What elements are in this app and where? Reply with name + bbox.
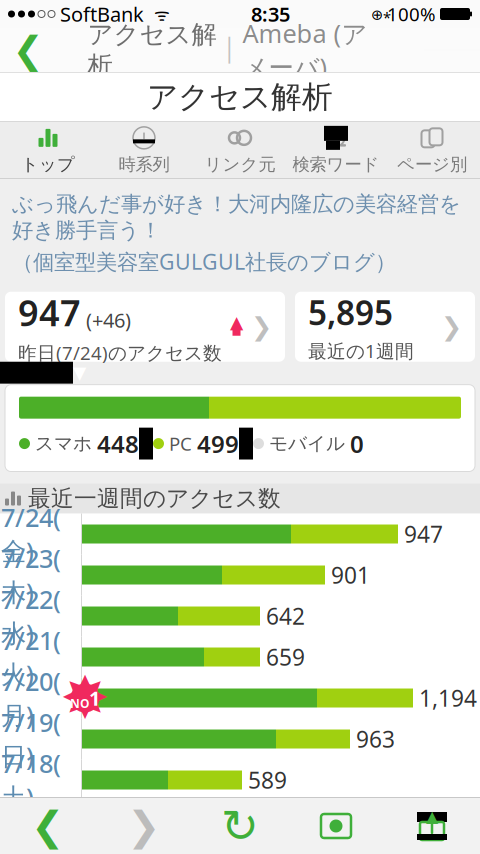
staticText: 0 xyxy=(350,428,364,459)
staticText: 1 xyxy=(89,685,100,711)
staticText: (+46) xyxy=(86,307,131,333)
staticText: （個室型美容室GULGUL社長のブログ） xyxy=(12,247,396,276)
button[interactable]: アクセス数をもっとみる xyxy=(0,801,480,843)
staticText: PC xyxy=(169,431,192,456)
staticText: 7/20(月) xyxy=(1,664,61,732)
button[interactable]: Reload xyxy=(192,798,288,854)
staticText: ❮ xyxy=(31,803,65,849)
staticText: SoftBank xyxy=(55,1,144,27)
staticText: 659 xyxy=(266,642,305,672)
staticText: スマホ xyxy=(35,432,92,455)
button[interactable]: Access analytics xyxy=(288,798,384,854)
button[interactable]: 時系列 xyxy=(96,122,192,178)
staticText: ページ別 xyxy=(397,154,467,175)
staticText: 947 xyxy=(404,519,443,549)
staticText: 963 xyxy=(356,724,395,754)
button[interactable]: 検索ワード xyxy=(288,122,384,178)
staticText: ✸ xyxy=(60,665,109,731)
staticText: ❯ xyxy=(441,312,462,341)
staticText: ❯ xyxy=(251,312,272,341)
staticText: ▲ xyxy=(426,807,438,826)
staticText: 8:35 xyxy=(251,1,290,27)
staticText: 7/24(金) xyxy=(1,500,61,568)
staticText: 5,895 xyxy=(308,290,393,334)
staticText: 7/19(日) xyxy=(1,705,61,773)
button[interactable]: リンク元 xyxy=(192,122,288,178)
staticText: 7/22(水) xyxy=(1,582,61,650)
staticText: ⊕ ⃰ xyxy=(371,4,387,24)
staticText: 589 xyxy=(248,765,287,795)
staticText: ❮ xyxy=(12,29,43,71)
staticText: ❯ xyxy=(127,803,161,849)
staticText: 642 xyxy=(266,601,305,631)
button[interactable]: 5,895 xyxy=(295,292,475,362)
staticText: Ameba (アメーバ) xyxy=(242,16,367,84)
button[interactable]: Back xyxy=(0,798,96,854)
staticText: 昨日(7/24)のアクセス数 xyxy=(18,340,222,365)
button[interactable]: トップ xyxy=(0,122,96,178)
staticText: 時系列 xyxy=(118,154,169,175)
staticText: │ xyxy=(222,37,236,63)
button[interactable]: ページ別 xyxy=(384,122,480,178)
staticText: 1,194 xyxy=(419,683,477,713)
staticText: ▲ xyxy=(230,312,243,332)
staticText: 499 xyxy=(197,428,239,459)
staticText: アクセス解析 xyxy=(87,19,216,81)
staticText: ぶっ飛んだ事が好き！大河内隆広の美容経営を好き勝手言う！ xyxy=(12,191,461,243)
staticText: アクセス解析 xyxy=(147,78,333,116)
button[interactable]: Back xyxy=(0,28,56,72)
staticText: トップ xyxy=(21,154,75,175)
staticText: モバイル xyxy=(269,432,345,455)
staticText: ↻ xyxy=(221,800,259,852)
staticText: 7/23(木) xyxy=(1,541,61,609)
staticText: リンク元 xyxy=(204,154,275,175)
button[interactable]: 947 xyxy=(5,292,285,362)
button[interactable]: Forward xyxy=(96,798,192,854)
staticText: 最近の1週間 xyxy=(308,338,414,363)
staticText: 448 xyxy=(97,428,139,459)
staticText: NO xyxy=(70,695,89,711)
staticText: アクセス数をもっとみる xyxy=(194,809,447,836)
staticText: 947 xyxy=(18,288,81,336)
staticText: 最近一週間のアクセス数 xyxy=(28,485,281,512)
staticText: 7/21(火) xyxy=(1,623,61,691)
staticText: 検索ワード xyxy=(292,154,379,175)
staticText: 7/18(土) xyxy=(1,746,61,814)
staticText: 100% xyxy=(387,2,436,26)
staticText: ᯤ xyxy=(144,2,170,25)
staticText: 901 xyxy=(331,560,370,590)
button[interactable]: Share xyxy=(384,798,480,854)
staticText: ▼ xyxy=(73,363,86,383)
